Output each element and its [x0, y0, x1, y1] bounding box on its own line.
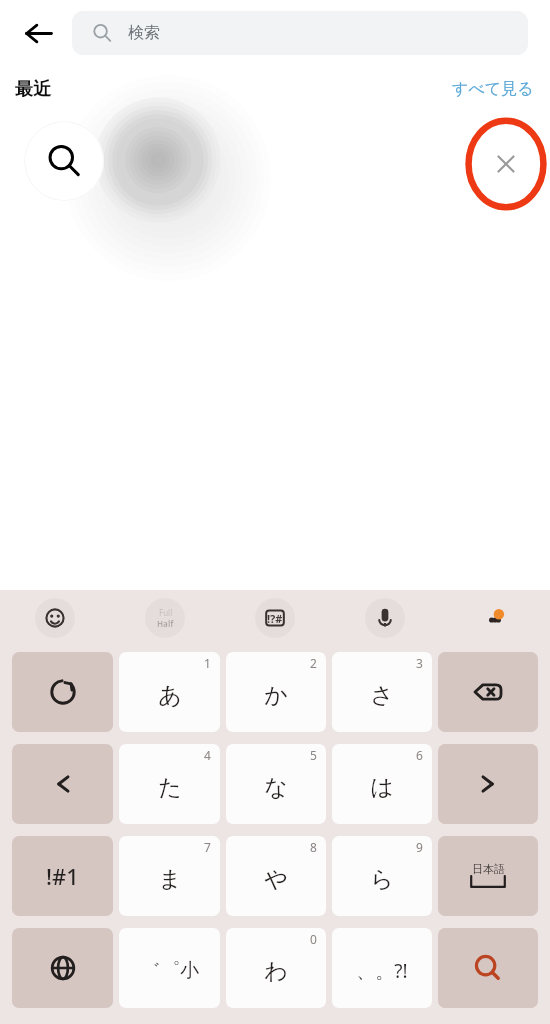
button[interactable]: sym: [12, 836, 113, 916]
button[interactable]: Back: [10, 5, 66, 61]
staticText: 9: [416, 839, 423, 855]
button[interactable]: space: [438, 836, 538, 916]
button[interactable]: search: [438, 928, 538, 1008]
button[interactable]: Recent search: [24, 121, 104, 201]
button[interactable]: 2: [226, 652, 326, 732]
button[interactable]: 4: [119, 744, 220, 824]
staticText: 8: [310, 839, 317, 855]
staticText: !?#: [267, 611, 283, 626]
staticText: ま: [158, 865, 182, 894]
button[interactable]: More options: [440, 590, 550, 646]
button[interactable]: globe: [12, 928, 113, 1008]
staticText: ゛゜小: [141, 959, 199, 983]
staticText: 4: [204, 747, 211, 763]
staticText: 1: [204, 655, 211, 671]
button[interactable]: Full width: [110, 590, 220, 646]
button[interactable]: Symbols: [220, 590, 330, 646]
staticText: あ: [158, 681, 182, 710]
staticText: 5: [310, 747, 317, 763]
staticText: た: [158, 773, 182, 802]
button[interactable]: right: [438, 744, 538, 824]
staticText: 6: [416, 747, 423, 763]
button[interactable]: 9: [332, 836, 432, 916]
button[interactable]: ゛゜小: [119, 928, 220, 1008]
staticText: 3: [416, 655, 423, 671]
button[interactable]: left: [12, 744, 113, 824]
button[interactable]: refresh: [12, 652, 113, 732]
button[interactable]: 1: [119, 652, 220, 732]
staticText: さ: [370, 681, 394, 710]
button[interactable]: 、。?!: [332, 928, 432, 1008]
staticText: や: [264, 865, 288, 894]
staticText: か: [264, 681, 288, 710]
button[interactable]: 0: [226, 928, 326, 1008]
staticText: Half: [157, 618, 174, 629]
staticText: !#1: [46, 861, 79, 891]
button[interactable]: back: [438, 652, 538, 732]
button[interactable]: 7: [119, 836, 220, 916]
button[interactable]: Voice input: [330, 590, 440, 646]
staticText: 0: [310, 931, 317, 947]
staticText: 検索: [128, 23, 160, 43]
button[interactable]: Remove: [470, 128, 542, 200]
button[interactable]: 8: [226, 836, 326, 916]
button[interactable]: Emoji: [0, 590, 110, 646]
staticText: わ: [264, 957, 288, 986]
staticText: Full: [159, 607, 173, 618]
button[interactable]: 6: [332, 744, 432, 824]
staticText: 日本語: [472, 862, 505, 876]
button[interactable]: 検索: [72, 11, 528, 55]
staticText: ら: [370, 865, 394, 894]
staticText: 7: [204, 839, 211, 855]
button[interactable]: すべて見る: [452, 79, 534, 99]
staticText: 2: [310, 655, 317, 671]
staticText: すべて見る: [452, 79, 534, 99]
button[interactable]: 5: [226, 744, 326, 824]
button[interactable]: 3: [332, 652, 432, 732]
staticText: 最近: [15, 78, 51, 101]
staticText: 、。?!: [356, 958, 408, 984]
staticText: は: [370, 773, 394, 802]
staticText: な: [264, 773, 288, 802]
